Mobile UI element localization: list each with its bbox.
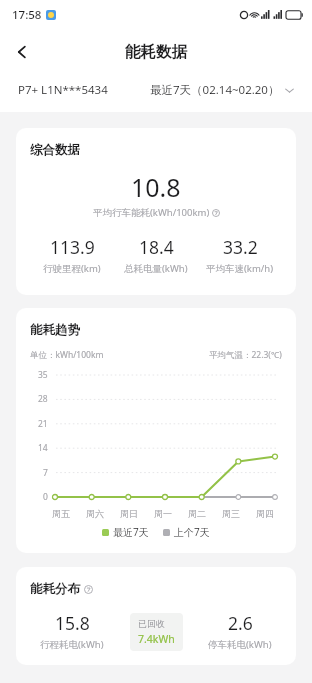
staticText: 周三	[222, 508, 240, 519]
staticText: 总耗电量(kWh)	[124, 262, 188, 275]
button[interactable]: 33.2	[198, 235, 282, 275]
staticText: 10.8	[131, 170, 181, 204]
button[interactable]: 最近7天（02.14~02.20）	[150, 82, 294, 98]
staticText: 上个7天	[174, 525, 210, 539]
button[interactable]: P7+ L1N***5434	[18, 82, 108, 98]
staticText: 综合数据	[30, 142, 80, 158]
staticText: 7.4kWh	[138, 632, 175, 646]
button[interactable]: 18.4	[114, 235, 198, 275]
staticText: 17:58	[12, 7, 42, 23]
button[interactable]: 113.9	[30, 235, 114, 275]
staticText: 已回收	[138, 618, 165, 629]
staticText: 能耗趋势	[30, 322, 80, 338]
staticText: 15.8	[55, 611, 90, 635]
button[interactable]: 15.8	[30, 611, 114, 651]
staticText: 单位：kWh/100km	[30, 349, 104, 361]
staticText: 平均气温：22.3(℃)	[209, 349, 282, 361]
staticText: 最近7天	[113, 525, 149, 539]
staticText: 2.6	[228, 611, 253, 635]
staticText: 周一	[154, 508, 172, 519]
staticText: P7+ L1N***5434	[18, 82, 108, 98]
staticText: 行驶里程(km)	[43, 262, 101, 275]
staticText: 14	[38, 442, 48, 454]
button[interactable]: 上个7天	[163, 525, 210, 539]
staticText: 21	[38, 418, 48, 430]
staticText: 113.9	[50, 235, 95, 259]
staticText: 行程耗电(kWh)	[40, 638, 104, 651]
staticText: 能耗分布	[30, 581, 80, 597]
staticText: 35	[38, 369, 48, 381]
staticText: 0	[43, 491, 48, 503]
staticText: 平均车速(km/h)	[206, 262, 274, 275]
button[interactable]: 最近7天	[102, 525, 149, 539]
staticText: 停车耗电(kWh)	[208, 638, 272, 651]
staticText: 平均行车能耗(kWh/100km)	[93, 206, 210, 219]
staticText: 周五	[52, 508, 70, 519]
staticText: 最近7天（02.14~02.20）	[150, 82, 280, 98]
button[interactable]: Back	[0, 30, 44, 74]
staticText: 周日	[120, 508, 138, 519]
button[interactable]: 已回收	[130, 613, 183, 651]
staticText: 周二	[188, 508, 206, 519]
staticText: 周六	[86, 508, 104, 519]
staticText: 28	[38, 393, 48, 405]
staticText: 33.2	[223, 235, 258, 259]
staticText: 能耗数据	[125, 42, 187, 62]
staticText: 7	[43, 467, 48, 479]
button[interactable]: 2.6	[198, 611, 282, 651]
staticText: 18.4	[139, 235, 174, 259]
staticText: 周四	[256, 508, 274, 519]
